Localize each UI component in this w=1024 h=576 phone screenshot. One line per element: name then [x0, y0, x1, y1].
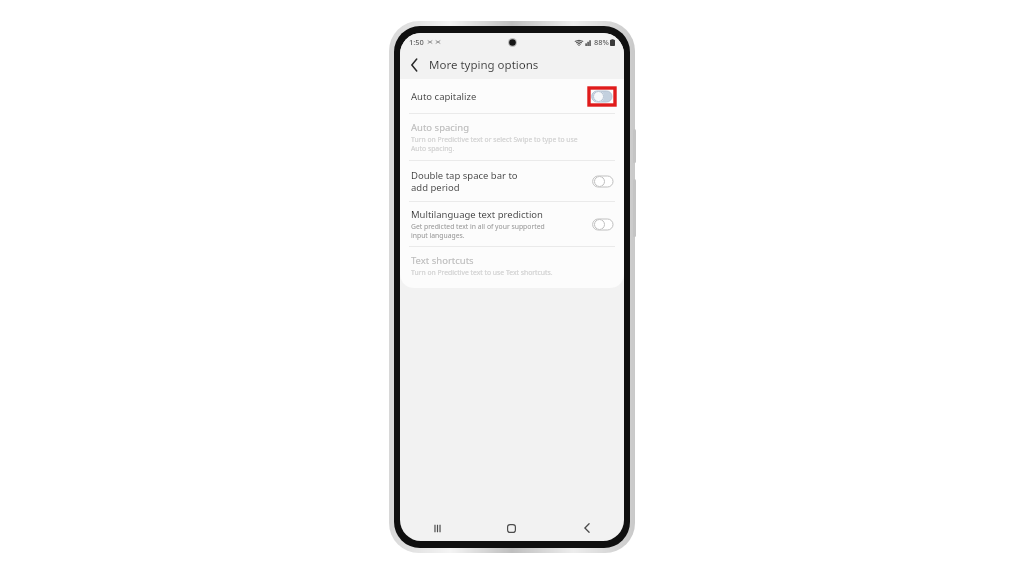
staticText: Text shortcuts [411, 254, 474, 267]
staticText: More typing options [429, 57, 539, 73]
button[interactable]: Toggle [593, 91, 612, 102]
button[interactable]: Text shortcuts [400, 247, 624, 284]
button[interactable]: Back [403, 54, 425, 76]
button[interactable]: Toggle [594, 176, 613, 187]
button[interactable]: Back [549, 515, 624, 541]
staticText: Auto capitalize [411, 90, 477, 103]
staticText: 1:50 [409, 37, 424, 47]
button[interactable]: Auto spacing [400, 114, 624, 160]
button[interactable]: Home [474, 515, 549, 541]
staticText: Turn on Predictive text or select Swipe … [411, 135, 579, 153]
staticText: Auto spacing [411, 121, 470, 134]
button[interactable]: Recents [400, 515, 474, 541]
staticText: Get predicted text in all of your suppor… [411, 222, 551, 240]
staticText: Turn on Predictive text to use Text shor… [411, 268, 579, 277]
button[interactable]: Double tap space bar to add period [400, 161, 624, 201]
button[interactable]: Toggle [594, 219, 613, 230]
staticText: 88% [594, 37, 609, 47]
staticText: Multilanguage text prediction [411, 208, 543, 221]
button[interactable]: Multilanguage text prediction [400, 202, 624, 246]
staticText: Double tap space bar to add period [411, 169, 529, 194]
button[interactable]: Auto capitalize [400, 79, 624, 113]
